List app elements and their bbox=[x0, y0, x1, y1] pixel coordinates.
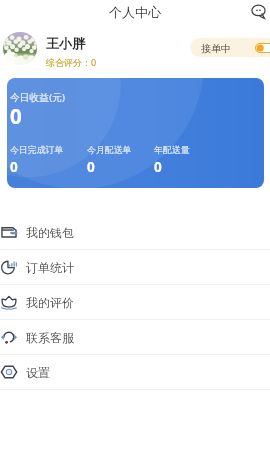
staticText: 接单中 bbox=[201, 42, 231, 55]
staticText: 我的评价 bbox=[26, 295, 74, 310]
button[interactable]: 接单中 bbox=[190, 38, 270, 57]
staticText: 0 bbox=[10, 102, 22, 130]
staticText: 综合评分：0 bbox=[46, 56, 97, 68]
staticText: 今月配送单 bbox=[87, 144, 132, 155]
staticText: 设置 bbox=[26, 365, 50, 380]
button[interactable]: Avatar bbox=[3, 32, 37, 65]
button[interactable]: Messages bbox=[251, 4, 266, 19]
staticText: 我的钱包 bbox=[26, 225, 74, 240]
staticText: 年配送量 bbox=[154, 144, 190, 155]
staticText: 0 bbox=[87, 158, 95, 176]
staticText: 今日收益(元) bbox=[10, 91, 65, 104]
staticText: 订单统计 bbox=[26, 260, 74, 275]
button[interactable]: 订单统计 bbox=[0, 250, 270, 285]
button[interactable]: 我的评价 bbox=[0, 285, 270, 320]
staticText: 0 bbox=[10, 158, 18, 176]
button[interactable]: 我的钱包 bbox=[0, 215, 270, 250]
staticText: 王小胖 bbox=[46, 35, 85, 51]
staticText: 联系客服 bbox=[26, 330, 74, 345]
staticText: 0 bbox=[154, 158, 162, 176]
staticText: 个人中心 bbox=[109, 4, 161, 20]
button[interactable]: 设置 bbox=[0, 355, 270, 390]
button[interactable]: 联系客服 bbox=[0, 320, 270, 355]
staticText: 今日完成订单 bbox=[10, 144, 64, 155]
